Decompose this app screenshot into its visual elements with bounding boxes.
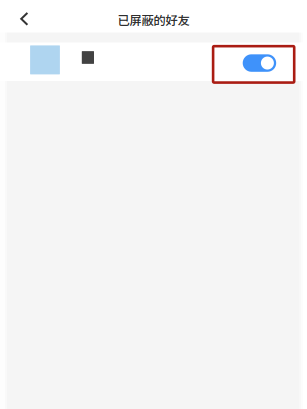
button[interactable]: Unblock this friend <box>0 42 33 60</box>
button[interactable] <box>0 42 307 81</box>
button[interactable]: Back <box>0 0 30 32</box>
staticText: 已屏蔽的好友 <box>117 11 189 28</box>
